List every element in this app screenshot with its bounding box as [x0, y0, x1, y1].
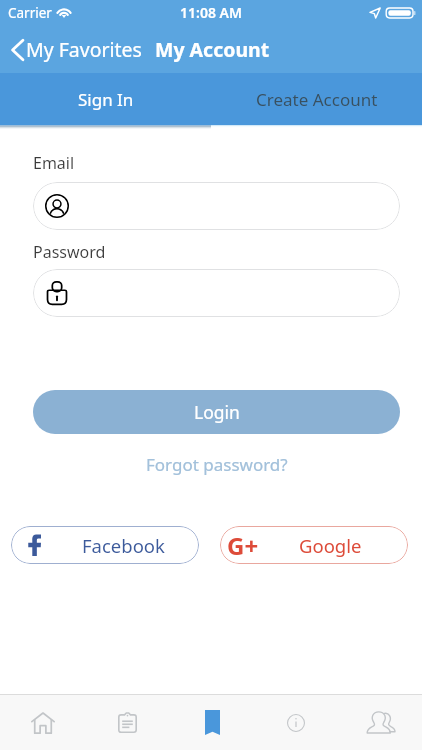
staticText: Password	[33, 241, 106, 263]
staticText: Carrier	[8, 4, 52, 22]
button[interactable]	[33, 182, 400, 230]
button[interactable]: Info	[254, 695, 338, 750]
button[interactable]: Friends	[338, 695, 422, 750]
staticText: Create Account	[256, 88, 378, 111]
button[interactable]: G+	[220, 526, 408, 564]
staticText: Google	[299, 533, 362, 558]
button[interactable]	[33, 269, 400, 317]
button[interactable]: Home	[0, 695, 85, 750]
staticText: Facebook	[82, 533, 165, 558]
staticText: My Account	[155, 36, 270, 63]
staticText: 11:08 AM	[180, 3, 242, 22]
button[interactable]: My Favorites	[0, 36, 146, 63]
staticText: Sign In	[78, 88, 134, 111]
button[interactable]: Sign In	[0, 73, 211, 125]
button[interactable]: Login	[33, 390, 400, 434]
button[interactable]: Forgot password?	[146, 453, 288, 476]
button[interactable]: Create Account	[211, 73, 422, 125]
button[interactable]: Facebook	[11, 526, 199, 564]
button[interactable]: Favorites	[170, 695, 254, 750]
staticText: Email	[33, 152, 75, 174]
staticText: My Favorites	[26, 36, 142, 63]
staticText: Login	[194, 400, 240, 424]
staticText: G+	[227, 529, 259, 562]
button[interactable]: Orders	[85, 695, 170, 750]
